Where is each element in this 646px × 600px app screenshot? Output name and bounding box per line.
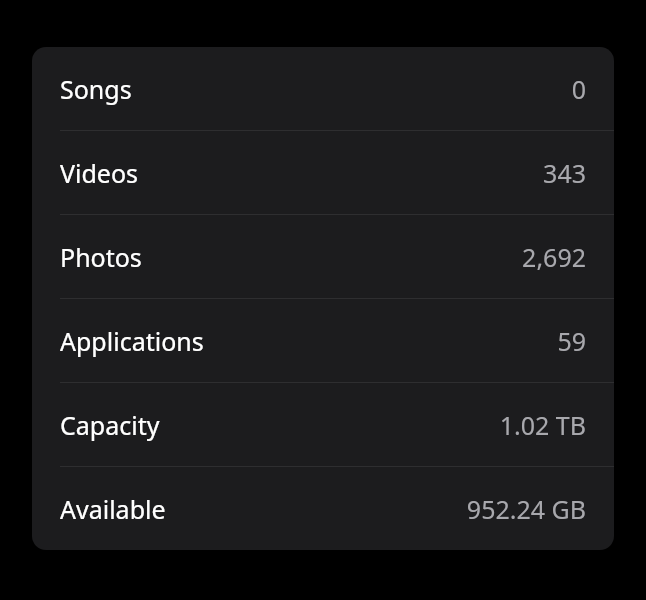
button[interactable]: Applications <box>32 299 614 382</box>
staticText: 1.02 TB <box>499 408 586 442</box>
staticText: 0 <box>571 72 586 106</box>
button[interactable]: Photos <box>32 215 614 298</box>
staticText: Capacity <box>60 408 160 442</box>
staticText: Songs <box>60 72 132 106</box>
staticText: Photos <box>60 240 142 274</box>
staticText: 952.24 GB <box>466 492 586 526</box>
staticText: Videos <box>60 156 139 190</box>
button[interactable]: Videos <box>32 131 614 214</box>
button[interactable]: Available <box>32 467 614 550</box>
staticText: Applications <box>60 324 204 358</box>
staticText: 2,692 <box>522 240 586 274</box>
staticText: 59 <box>557 324 586 358</box>
button[interactable]: Capacity <box>32 383 614 466</box>
staticText: 343 <box>543 156 586 190</box>
button[interactable]: Songs <box>32 47 614 130</box>
staticText: Available <box>60 492 166 526</box>
